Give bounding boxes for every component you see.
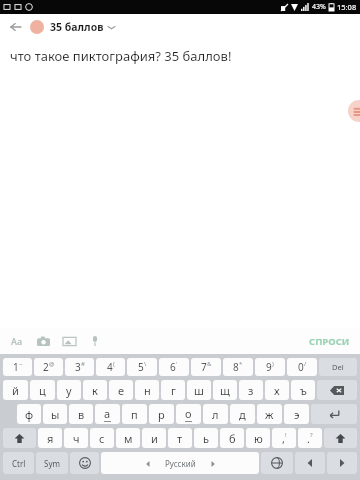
button[interactable]: Emoji: [70, 452, 99, 474]
button[interactable]: Left: [295, 452, 325, 474]
button[interactable]: Sym: [36, 452, 68, 474]
staticText: 5: [138, 360, 144, 374]
staticText: 8: [233, 360, 239, 374]
button[interactable]: т: [168, 428, 192, 448]
staticText: (: [113, 360, 115, 368]
button[interactable]: б: [220, 428, 244, 448]
staticText: 1: [13, 360, 19, 374]
staticText: с: [99, 431, 105, 446]
button[interactable]: л: [203, 404, 228, 424]
button[interactable]: ы: [43, 404, 67, 424]
staticText: Del: [332, 362, 344, 372]
button[interactable]: щ: [213, 380, 237, 400]
button[interactable]: 6: [159, 358, 189, 376]
staticText: /: [304, 360, 307, 368]
button[interactable]: 35 баллов: [30, 20, 115, 34]
button[interactable]: Backspace: [317, 380, 357, 400]
staticText: р: [158, 407, 165, 422]
button[interactable]: ж: [257, 404, 282, 424]
staticText: &: [207, 360, 212, 368]
staticText: з: [248, 383, 254, 398]
button[interactable]: к: [83, 380, 107, 400]
staticText: и: [151, 431, 158, 446]
staticText: ): [272, 360, 274, 368]
button[interactable]: Back: [6, 17, 26, 37]
button[interactable]: х: [265, 380, 289, 400]
button[interactable]: о: [176, 404, 201, 424]
button[interactable]: р: [149, 404, 174, 424]
button[interactable]: ь: [194, 428, 218, 448]
button[interactable]: Space: [101, 452, 259, 474]
button[interactable]: ш: [187, 380, 211, 400]
button[interactable]: Enter: [311, 404, 357, 424]
button[interactable]: Voice input: [87, 333, 103, 349]
button[interactable]: и: [142, 428, 166, 448]
button[interactable]: 4: [96, 358, 125, 376]
staticText: 2: [43, 360, 49, 374]
button[interactable]: 9: [255, 358, 285, 376]
button[interactable]: й: [3, 380, 28, 400]
button[interactable]: ъ: [291, 380, 315, 400]
button[interactable]: з: [239, 380, 263, 400]
button[interactable]: с: [90, 428, 114, 448]
button[interactable]: д: [230, 404, 255, 424]
staticText: 3: [75, 360, 81, 374]
button[interactable]: е: [109, 380, 133, 400]
button[interactable]: СПРОСИ: [309, 335, 350, 348]
button[interactable]: п: [122, 404, 147, 424]
button[interactable]: ,: [272, 428, 296, 448]
button[interactable]: 8: [223, 358, 253, 376]
staticText: х: [274, 383, 280, 398]
staticText: .: [307, 431, 310, 446]
button[interactable]: я: [38, 428, 62, 448]
button[interactable]: Change language: [261, 452, 293, 474]
button[interactable]: ц: [30, 380, 55, 400]
button[interactable]: у: [57, 380, 81, 400]
staticText: ~: [19, 360, 23, 368]
button[interactable]: Camera: [35, 333, 51, 349]
button[interactable]: Gallery: [61, 333, 77, 349]
button[interactable]: 2: [34, 358, 63, 376]
button[interactable]: 7: [191, 358, 221, 376]
staticText: *: [239, 360, 243, 368]
button[interactable]: м: [116, 428, 140, 448]
button[interactable]: .: [298, 428, 322, 448]
button[interactable]: Text format: [9, 333, 25, 349]
button[interactable]: Shift: [324, 428, 357, 448]
button[interactable]: 0: [287, 358, 317, 376]
staticText: Русский: [165, 458, 196, 469]
staticText: #: [81, 360, 85, 368]
staticText: ю: [254, 431, 263, 446]
button[interactable]: Ctrl: [3, 452, 34, 474]
button[interactable]: Delete: [319, 358, 357, 376]
staticText: 35 баллов: [50, 20, 104, 34]
staticText: л: [212, 407, 219, 422]
staticText: к: [92, 383, 98, 398]
staticText: б: [229, 431, 236, 446]
button[interactable]: в: [69, 404, 93, 424]
button[interactable]: а: [95, 404, 120, 424]
staticText: 6: [170, 360, 176, 374]
button[interactable]: н: [135, 380, 159, 400]
staticText: у: [66, 383, 72, 398]
button[interactable]: ч: [64, 428, 88, 448]
button[interactable]: ф: [17, 404, 41, 424]
staticText: п: [131, 407, 138, 422]
staticText: ф: [25, 407, 34, 422]
staticText: СПРОСИ: [309, 335, 350, 348]
staticText: т: [177, 431, 183, 446]
staticText: 4: [107, 360, 113, 374]
staticText: 15:08: [337, 2, 357, 12]
staticText: ч: [73, 431, 80, 446]
staticText: о: [185, 406, 192, 421]
button[interactable]: г: [161, 380, 185, 400]
button[interactable]: Shift: [3, 428, 36, 448]
staticText: г: [171, 383, 176, 398]
button[interactable]: 3: [65, 358, 94, 376]
button[interactable]: э: [284, 404, 309, 424]
button[interactable]: Right: [327, 452, 357, 474]
button[interactable]: 5: [127, 358, 157, 376]
staticText: Sym: [44, 458, 60, 469]
button[interactable]: 1: [3, 358, 32, 376]
button[interactable]: ю: [246, 428, 270, 448]
